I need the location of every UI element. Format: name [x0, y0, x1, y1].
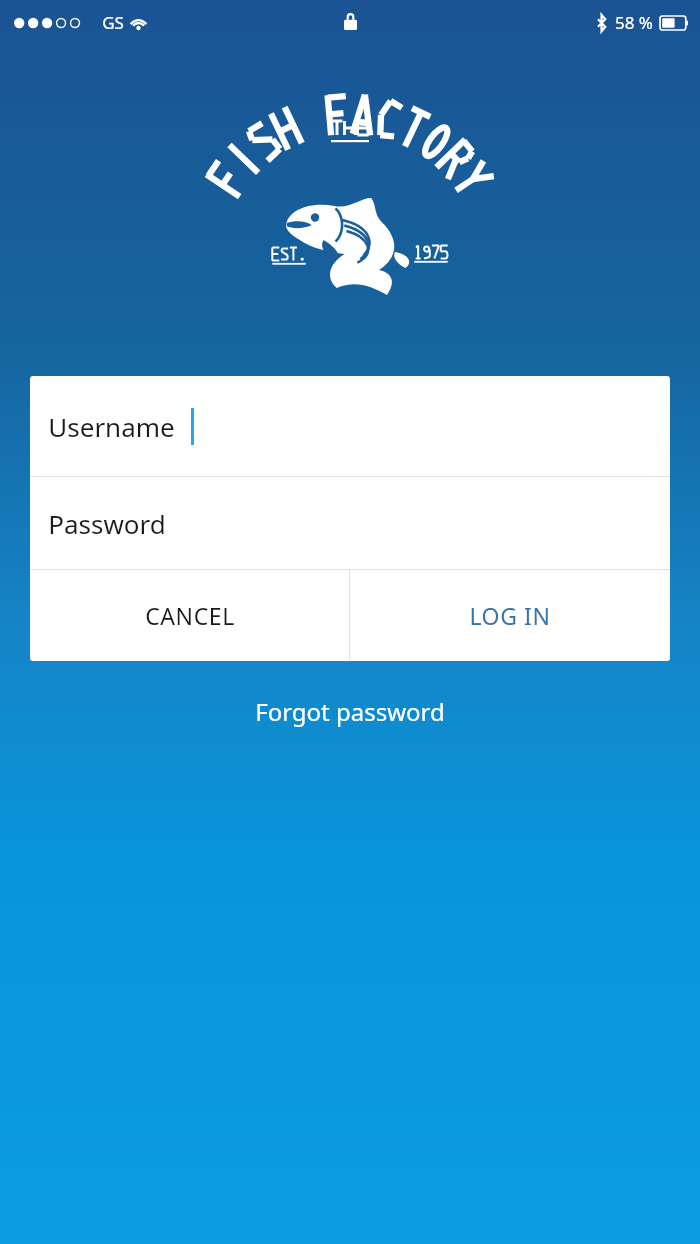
staticText: LOG IN — [469, 600, 551, 631]
staticText: CANCEL — [145, 600, 235, 631]
button[interactable]: LOG IN — [350, 570, 670, 661]
staticText: Username — [48, 409, 175, 444]
staticText: 58 % — [615, 11, 653, 34]
button[interactable]: Username — [30, 376, 670, 476]
staticText: Forgot password — [255, 695, 445, 728]
staticText: Password — [48, 506, 166, 541]
button[interactable]: CANCEL — [30, 570, 349, 661]
button[interactable]: Password — [30, 477, 670, 569]
button[interactable]: Forgot password — [239, 689, 461, 734]
staticText: GS — [102, 11, 124, 34]
